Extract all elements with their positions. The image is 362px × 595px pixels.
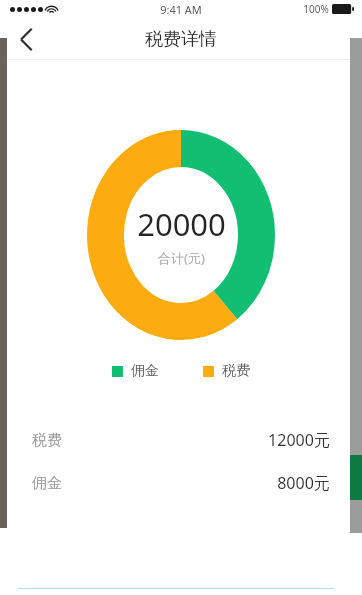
button[interactable]: 佣金 — [112, 360, 159, 382]
staticText: 20000 — [137, 203, 226, 245]
button[interactable]: 税费 — [0, 428, 362, 452]
staticText: 9:41 AM — [160, 2, 202, 17]
staticText: 佣金 — [131, 362, 159, 380]
staticText: 8000元 — [277, 472, 330, 494]
staticText: 佣金 — [32, 474, 62, 493]
staticText: 税费 — [32, 431, 62, 450]
button[interactable]: 佣金 — [0, 471, 362, 495]
button[interactable]: 税费 — [203, 360, 250, 382]
button[interactable]: Back — [6, 19, 46, 59]
staticText: 税费详情 — [145, 28, 217, 51]
staticText: 100% — [303, 2, 329, 16]
staticText: 12000元 — [268, 429, 330, 451]
staticText: 合计(元) — [158, 249, 205, 267]
staticText: 税费 — [222, 362, 250, 380]
